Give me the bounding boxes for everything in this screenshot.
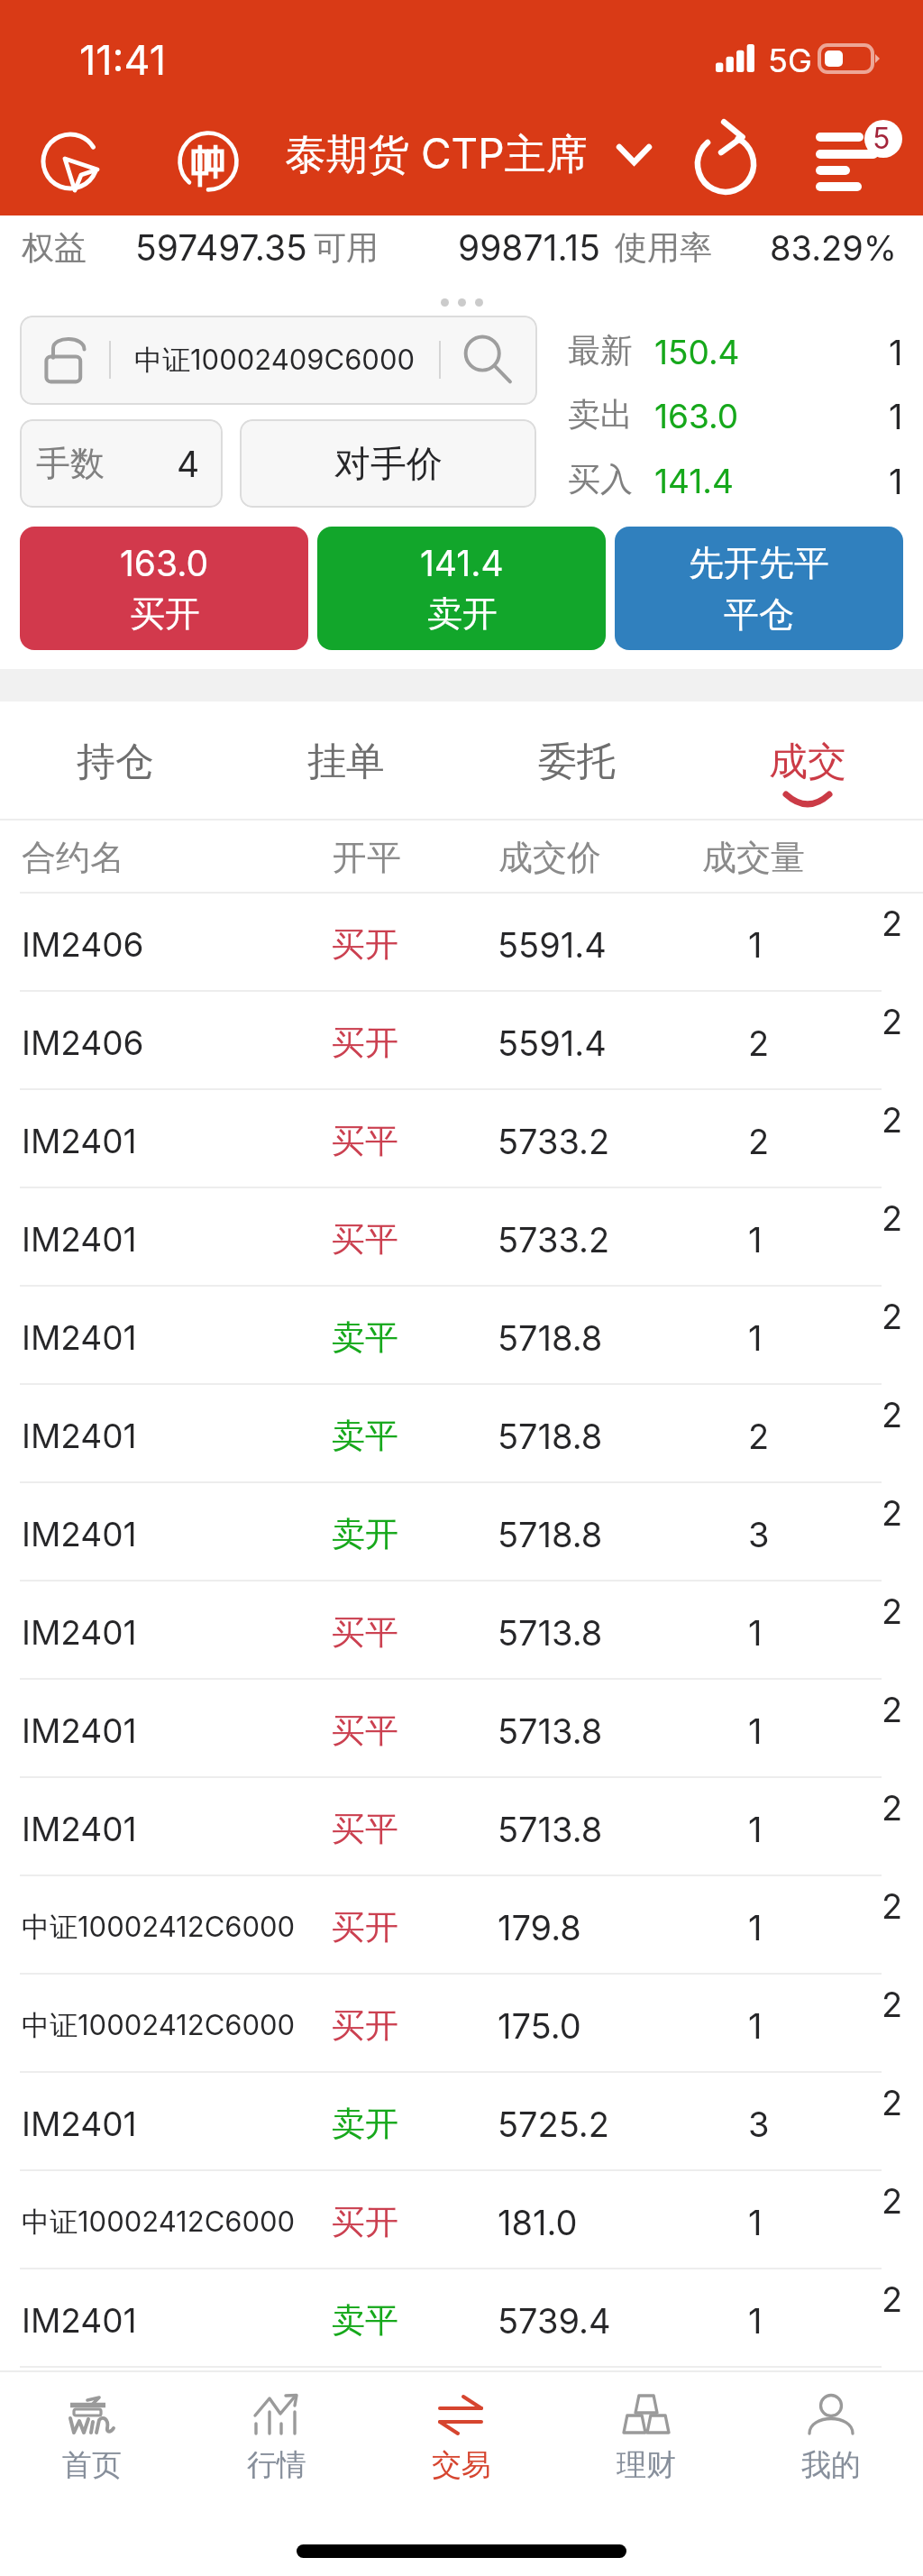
staticText: 2 <box>882 1099 903 1141</box>
button[interactable]: Market <box>177 131 240 194</box>
staticText: 5591.4 <box>498 1022 607 1064</box>
staticText: 1 <box>889 332 903 373</box>
staticText: 2 <box>882 1001 903 1042</box>
staticText: 中证10002412C6000 <box>22 1910 296 1945</box>
button[interactable]: IM2401 <box>0 2269 923 2368</box>
staticText: 首页 <box>62 2446 122 2484</box>
staticText: 2 <box>882 1984 903 2025</box>
staticText: 泰期货 CTP主席 <box>285 128 588 180</box>
button[interactable]: IM2401 <box>0 1581 923 1680</box>
staticText: 2 <box>882 2180 903 2222</box>
button[interactable]: 泰期货 CTP主席 <box>285 128 652 180</box>
staticText: 163.0 <box>654 396 739 436</box>
button[interactable]: IM2401 <box>0 1680 923 1778</box>
staticText: 卖平 <box>332 1415 398 1457</box>
button[interactable]: 委托 <box>461 701 692 820</box>
staticText: 1 <box>748 2300 763 2342</box>
staticText: IM2406 <box>22 1022 144 1063</box>
staticText: 买开 <box>130 591 200 636</box>
staticText: 买开 <box>332 923 398 966</box>
staticText: IM2401 <box>22 1809 137 1849</box>
button[interactable]: 理财 <box>553 2372 738 2516</box>
button[interactable]: IM2401 <box>0 1385 923 1483</box>
staticText: IM2401 <box>22 1416 137 1456</box>
staticText: IM2401 <box>22 2300 137 2341</box>
staticText: 买平 <box>332 1808 398 1850</box>
staticText: 卖平 <box>332 2299 398 2342</box>
button[interactable]: IM2401 <box>0 1090 923 1188</box>
staticText: 5718.8 <box>498 1317 603 1359</box>
staticText: IM2401 <box>22 1219 137 1260</box>
staticText: 1 <box>748 2202 763 2243</box>
button[interactable]: 成交 <box>692 701 923 820</box>
staticText: 开平 <box>333 836 401 879</box>
staticText: 交易 <box>432 2446 491 2484</box>
staticText: 1 <box>748 1809 763 1850</box>
button[interactable]: 141.4 <box>317 527 606 650</box>
staticText: 平仓 <box>724 592 794 637</box>
staticText: 最新 <box>568 330 633 371</box>
staticText: 买开 <box>332 2201 398 2243</box>
staticText: 5713.8 <box>498 1710 603 1752</box>
button[interactable]: IM2401 <box>0 1483 923 1581</box>
staticText: 卖开 <box>332 2103 398 2145</box>
button[interactable]: IM2401 <box>0 1188 923 1287</box>
button[interactable]: 交易 <box>369 2372 553 2516</box>
button[interactable]: 中证10002409C6000 <box>20 316 537 405</box>
staticText: 卖平 <box>332 1316 398 1359</box>
staticText: IM2401 <box>22 1612 137 1653</box>
staticText: 买开 <box>332 2004 398 2047</box>
button[interactable]: IM2406 <box>0 894 923 992</box>
staticText: 2 <box>748 1121 770 1162</box>
staticText: 买平 <box>332 1611 398 1654</box>
button[interactable]: IM2401 <box>0 1287 923 1385</box>
staticText: 141.4 <box>654 461 734 501</box>
button[interactable]: 中证10002412C6000 <box>0 1975 923 2073</box>
button[interactable]: IM2401 <box>0 1778 923 1876</box>
staticText: 3 <box>748 1514 770 1555</box>
button[interactable]: Orders <box>811 117 901 200</box>
button[interactable]: Refresh <box>685 122 766 203</box>
staticText: 使用率 <box>615 227 712 268</box>
button[interactable]: IM2406 <box>0 992 923 1090</box>
staticText: 卖开 <box>332 1513 398 1555</box>
staticText: 买开 <box>332 1906 398 1948</box>
button[interactable]: 先开先平 <box>615 527 903 650</box>
button[interactable]: 挂单 <box>231 701 461 820</box>
button[interactable]: Navigate <box>34 126 105 197</box>
staticText: IM2401 <box>22 1317 137 1358</box>
staticText: 5 <box>873 121 891 156</box>
button[interactable]: IM2401 <box>0 2073 923 2171</box>
staticText: 委托 <box>538 738 616 786</box>
button[interactable]: 行情 <box>184 2372 369 2516</box>
button[interactable]: 对手价 <box>240 419 536 508</box>
staticText: 买平 <box>332 1710 398 1752</box>
staticText: 我的 <box>801 2446 861 2484</box>
staticText: 2 <box>882 1492 903 1534</box>
staticText: 11:41 <box>79 35 167 84</box>
staticText: 163.0 <box>120 542 209 584</box>
staticText: 2 <box>882 903 903 944</box>
staticText: 卖开 <box>427 591 498 636</box>
staticText: 合约名 <box>22 836 124 879</box>
button[interactable]: 中证10002412C6000 <box>0 2171 923 2269</box>
staticText: 5718.8 <box>498 1416 603 1457</box>
staticText: 1 <box>748 1907 763 1948</box>
button[interactable]: 中证10002412C6000 <box>0 1876 923 1975</box>
staticText: 成交价 <box>498 836 601 879</box>
button[interactable]: 持仓 <box>0 701 231 820</box>
button[interactable]: 我的 <box>738 2372 923 2516</box>
staticText: 可用 <box>314 227 379 268</box>
staticText: 1 <box>748 1710 763 1752</box>
button[interactable]: 163.0 <box>20 527 308 650</box>
staticText: 1 <box>748 1612 763 1654</box>
button[interactable]: 手数 <box>20 419 223 508</box>
staticText: 成交量 <box>702 836 805 879</box>
staticText: 1 <box>748 924 763 966</box>
staticText: 2 <box>882 2278 903 2320</box>
button[interactable]: 首页 <box>0 2372 184 2516</box>
staticText: 83.29% <box>770 227 898 269</box>
staticText: 3 <box>748 2104 770 2145</box>
staticText: 2 <box>882 1787 903 1829</box>
staticText: 2 <box>882 1689 903 1730</box>
